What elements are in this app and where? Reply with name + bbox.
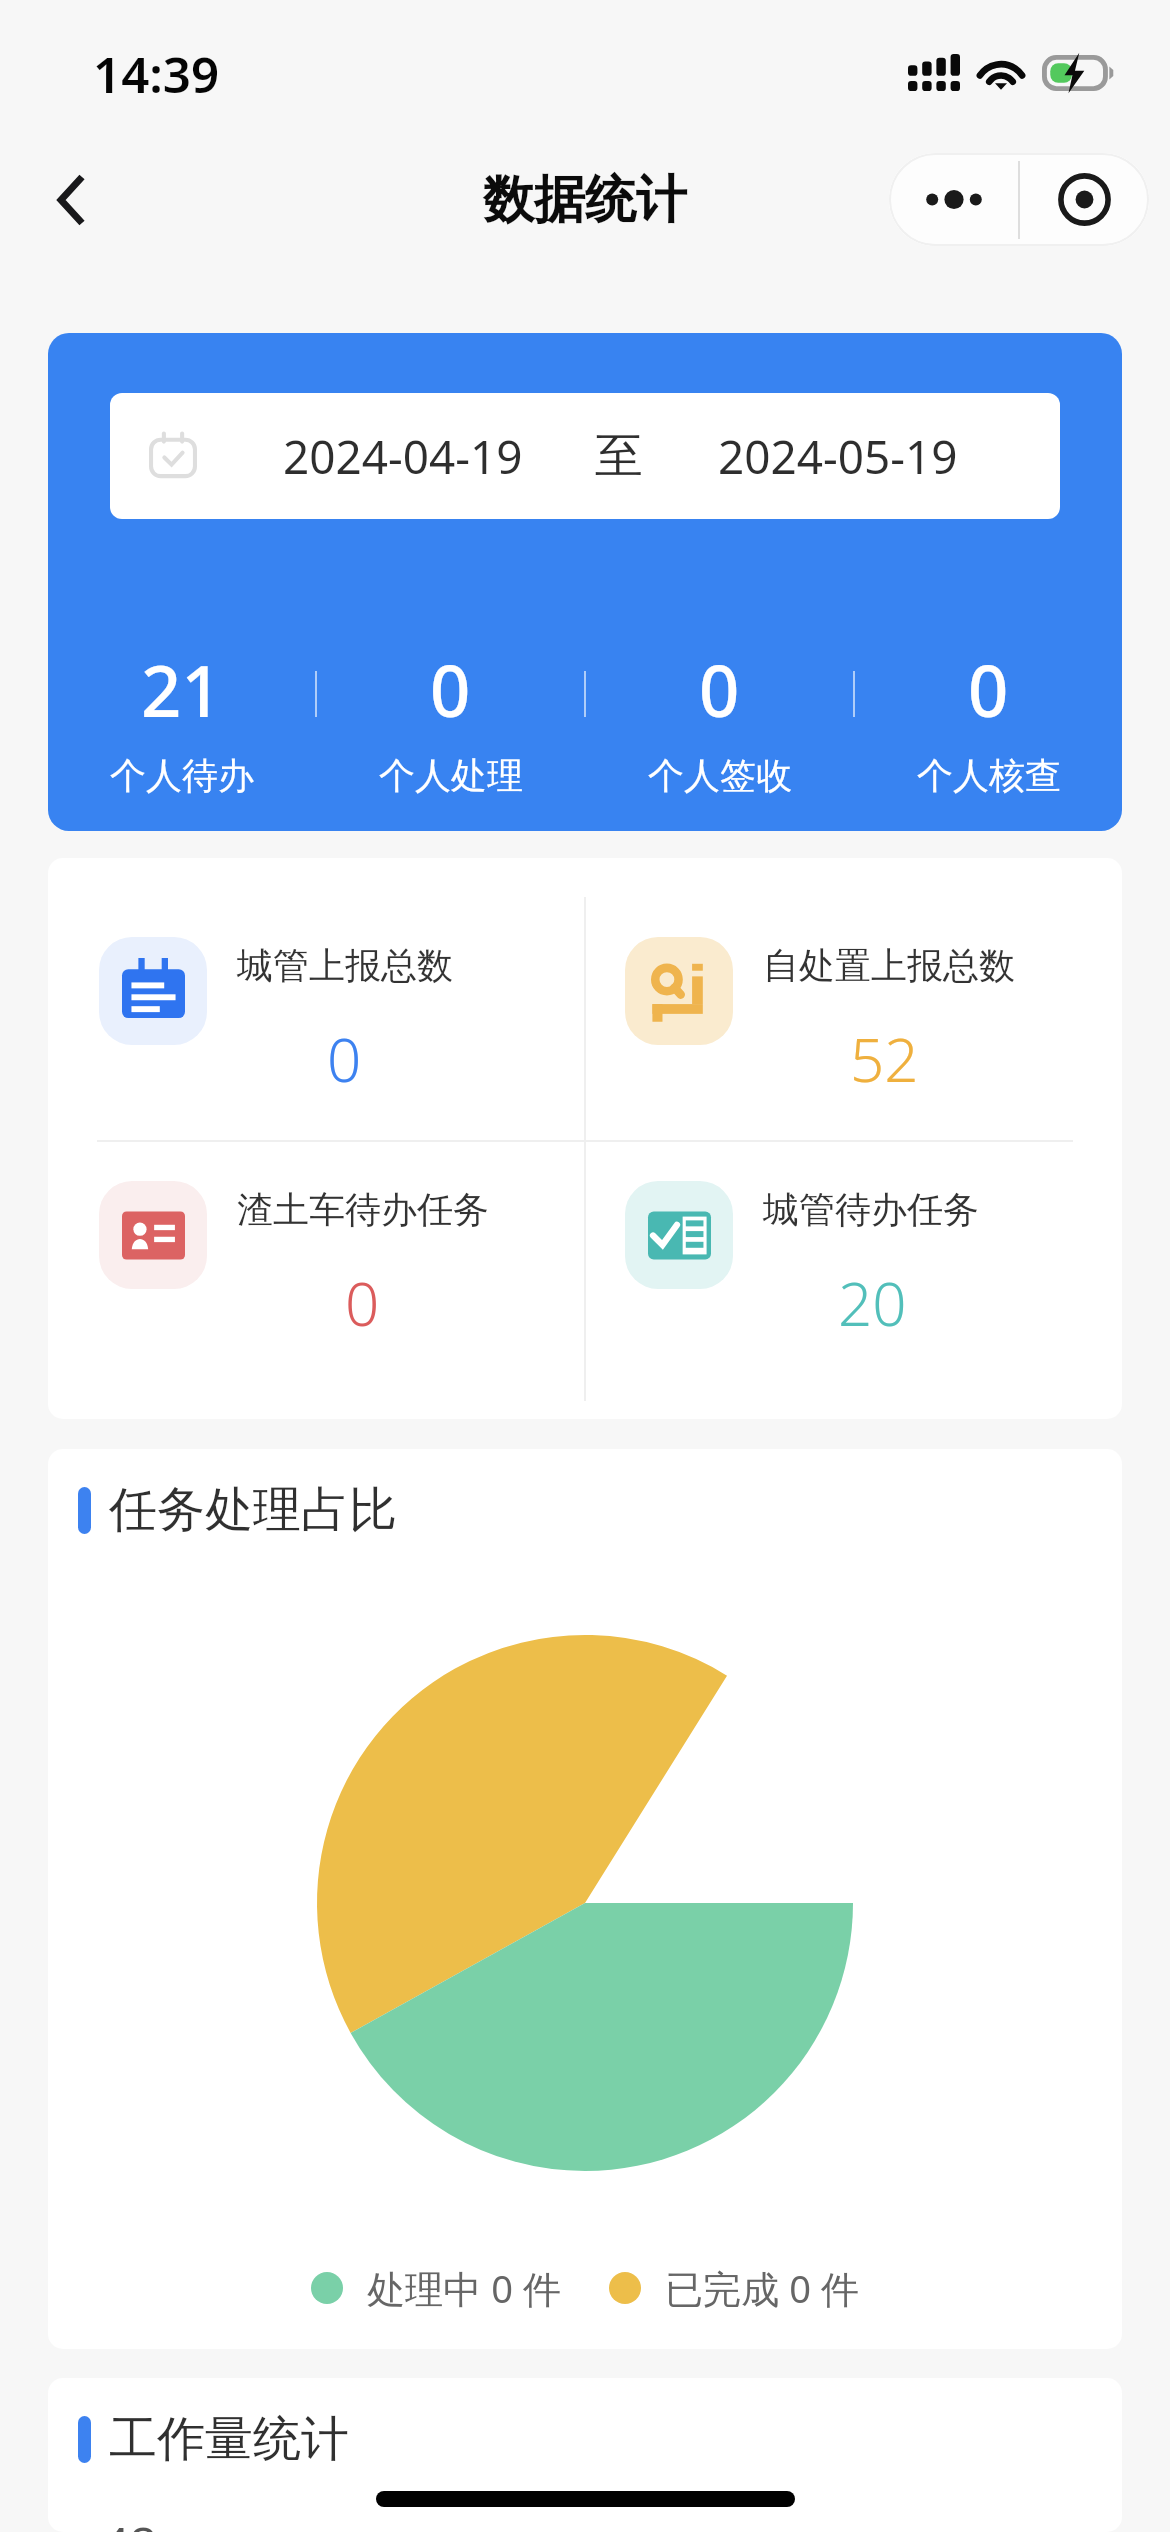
staticText: 处理中 0 件: [367, 2262, 561, 2314]
button[interactable]: 0: [855, 642, 1122, 798]
staticText: 城管待办任务: [763, 1187, 979, 1232]
button[interactable]: 城管待办任务: [586, 1142, 1122, 1419]
button[interactable]: Back: [5, 134, 137, 266]
staticText: 任务处理占比: [109, 1480, 397, 1540]
staticText: 20: [838, 1262, 907, 1344]
staticText: 个人待办: [110, 753, 254, 798]
button[interactable]: More options: [889, 153, 1018, 246]
staticText: 48: [102, 2511, 157, 2532]
staticText: 已完成 0 件: [665, 2262, 859, 2314]
staticText: 至: [595, 426, 643, 486]
button[interactable]: 自处置上报总数: [586, 858, 1122, 1140]
button[interactable]: 城管上报总数: [48, 858, 584, 1140]
staticText: 工作量统计: [109, 2409, 349, 2469]
staticText: 自处置上报总数: [763, 943, 1015, 988]
staticText: 0: [430, 642, 471, 738]
staticText: 21: [141, 642, 222, 738]
staticText: 数据统计: [483, 168, 687, 232]
staticText: 14:39: [93, 40, 220, 107]
staticText: 0: [699, 642, 740, 738]
button[interactable]: 渣土车待办任务: [48, 1142, 584, 1419]
staticText: 2024-04-19: [283, 425, 523, 488]
staticText: 个人处理: [379, 753, 523, 798]
staticText: 个人签收: [648, 753, 792, 798]
button[interactable]: 2024-04-19: [110, 393, 1060, 519]
staticText: 0: [345, 1262, 380, 1344]
staticText: 52: [850, 1018, 919, 1100]
button[interactable]: 0: [317, 642, 584, 798]
button[interactable]: Close mini program: [1020, 153, 1149, 246]
staticText: 渣土车待办任务: [237, 1187, 489, 1232]
staticText: 个人核查: [917, 753, 1061, 798]
staticText: 0: [968, 642, 1009, 738]
button[interactable]: 21: [48, 642, 315, 798]
button[interactable]: 0: [586, 642, 853, 798]
staticText: 2024-05-19: [718, 425, 958, 488]
staticText: 0: [327, 1018, 362, 1100]
staticText: 城管上报总数: [237, 943, 453, 988]
